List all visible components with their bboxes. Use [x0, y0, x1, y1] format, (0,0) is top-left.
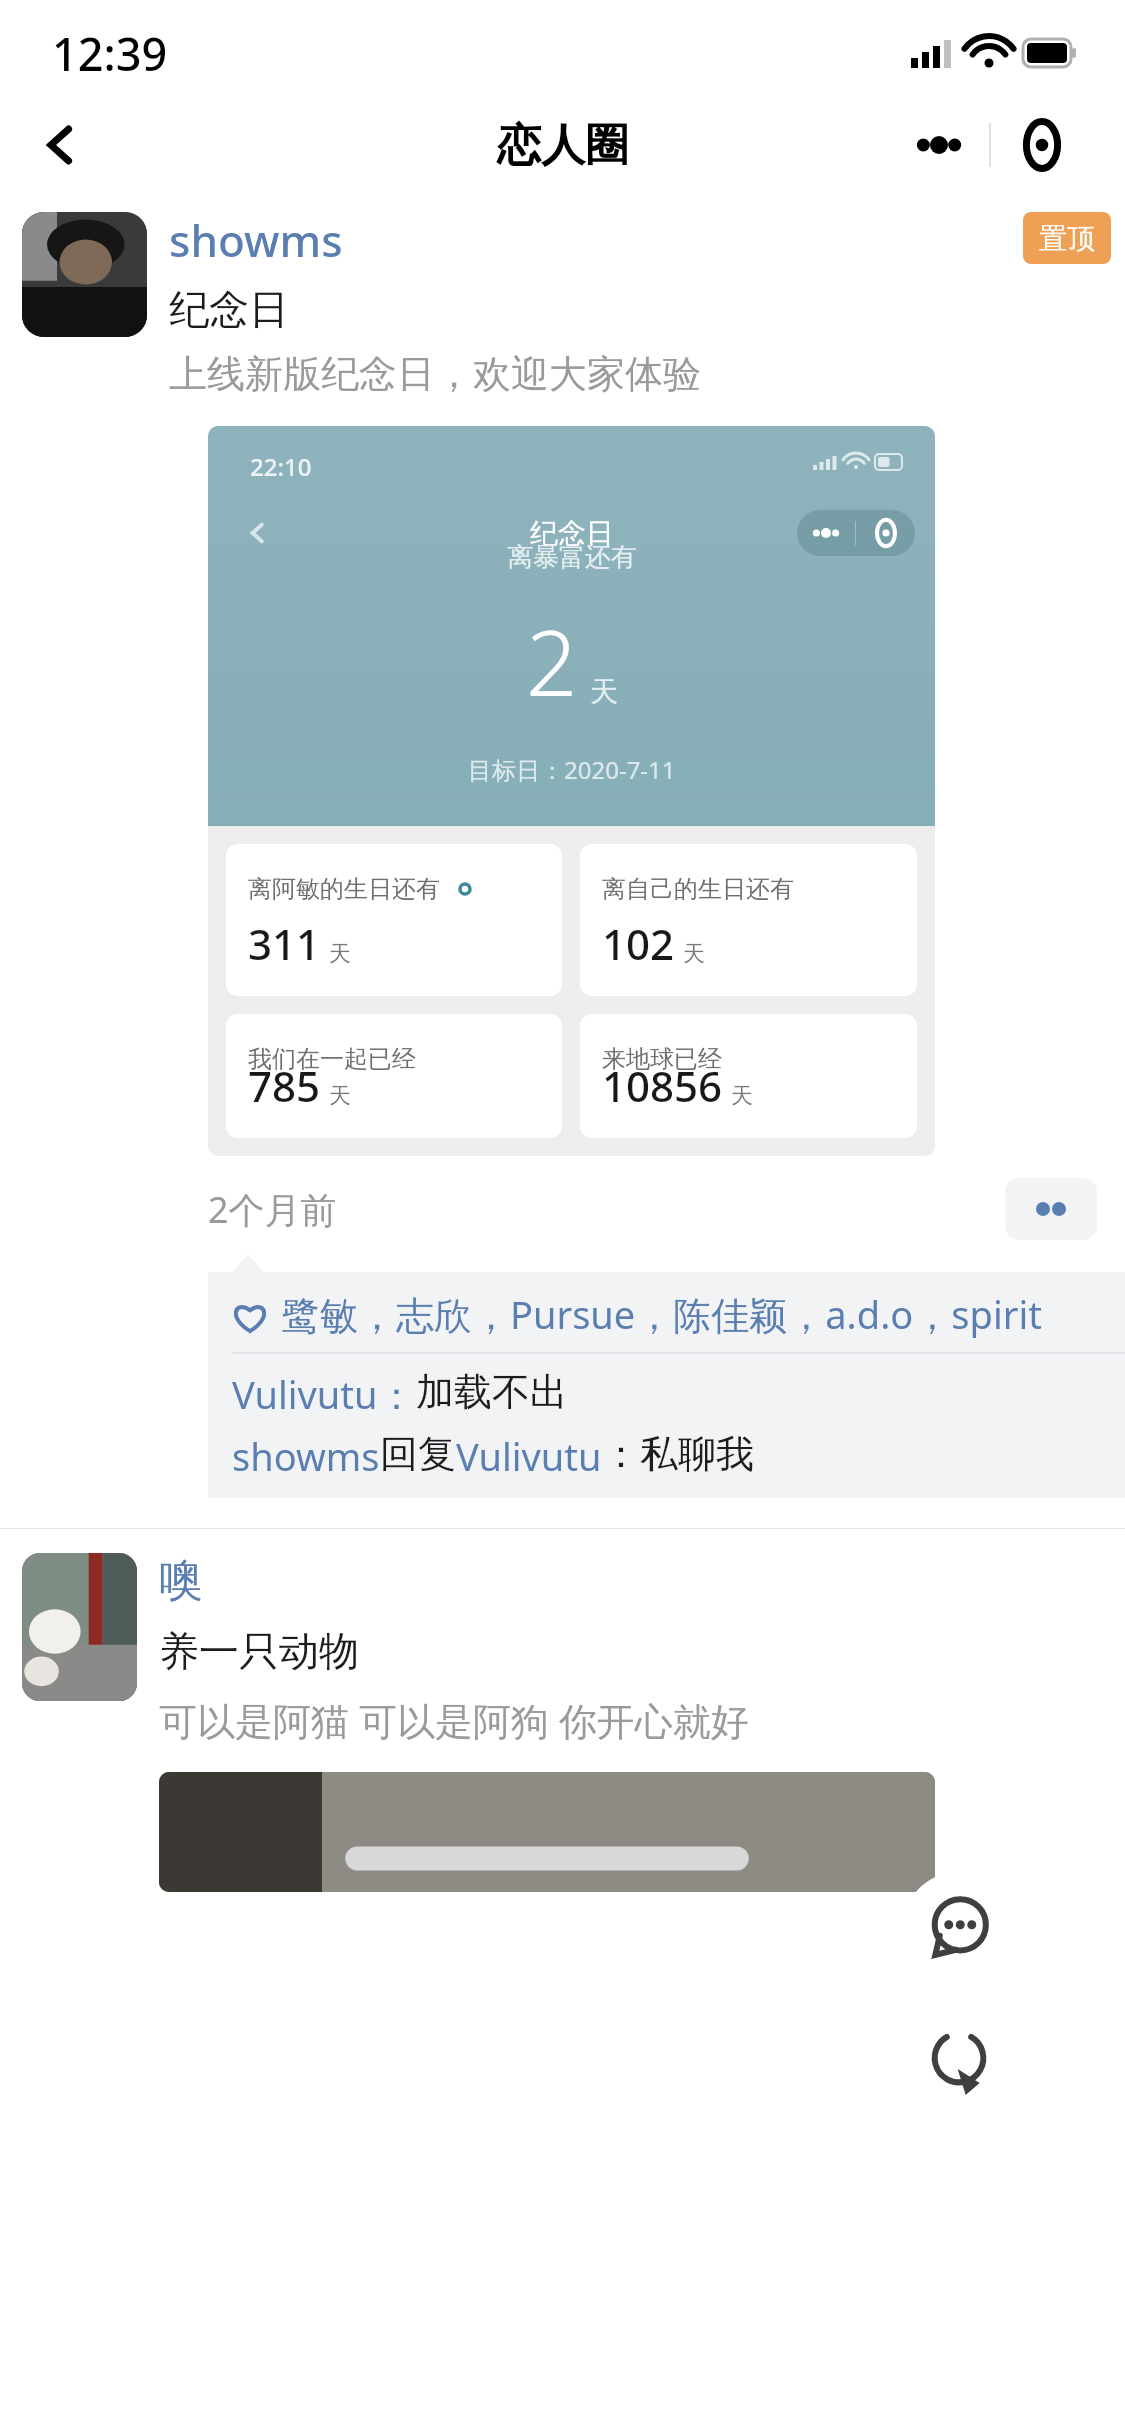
staticText: 加载不出 [416, 1368, 568, 1416]
button[interactable]: 22:10 [208, 426, 935, 1156]
button[interactable]: 来地球已经 [580, 1014, 917, 1138]
button[interactable]: Refresh [903, 2002, 1014, 2113]
staticText: 311 [248, 915, 321, 972]
button[interactable]: More actions [1005, 1178, 1097, 1240]
button[interactable]: Comments [903, 1872, 1014, 1983]
button[interactable]: 鹭敏，志欣，Pursue，陈佳颖，a.d.o，spirit [282, 1288, 1042, 1340]
button[interactable]: 噢 [159, 1553, 203, 1608]
button[interactable]: showms [232, 1430, 754, 1482]
staticText: 回复 [380, 1430, 456, 1478]
staticText: 来地球已经 [602, 1044, 722, 1074]
button[interactable]: More options [888, 105, 989, 185]
staticText: Vulivutu： [232, 1368, 416, 1420]
staticText: showms [232, 1430, 380, 1482]
staticText: 离阿敏的生日还有 [248, 874, 440, 904]
staticText: Vulivutu [456, 1430, 602, 1482]
staticText: ：私聊我 [602, 1430, 754, 1478]
staticText: 恋人圈 [497, 118, 629, 173]
staticText: 我们在一起已经 [248, 1044, 416, 1074]
staticText: 10856 [602, 1057, 723, 1114]
staticText: 102 [602, 915, 675, 972]
staticText: 纪念日 [169, 284, 289, 334]
button[interactable]: Back [22, 106, 100, 184]
staticText: 天 [329, 940, 351, 968]
button[interactable] [159, 1772, 935, 1892]
staticText: 785 [248, 1057, 321, 1114]
staticText: 天 [329, 1082, 351, 1110]
staticText: 目标日：2020-7-11 [468, 753, 676, 786]
button[interactable]: Target [991, 105, 1093, 185]
staticText: 离暴富还有 [507, 541, 637, 574]
button[interactable]: Avatar 噢 [22, 1553, 137, 1701]
staticText: 置顶 [1039, 221, 1095, 256]
staticText: 养一只动物 [159, 1626, 359, 1676]
staticText: 离自己的生日还有 [602, 874, 794, 904]
staticText: 12:39 [52, 23, 168, 84]
button[interactable]: showms [169, 210, 343, 270]
button[interactable]: 离阿敏的生日还有 [226, 844, 562, 996]
staticText: 天 [731, 1082, 753, 1110]
staticText: 纪念日 [530, 516, 614, 551]
staticText: 天 [590, 674, 618, 709]
button[interactable]: Avatar showms [22, 212, 147, 337]
staticText: 2个月前 [208, 1185, 337, 1234]
button[interactable]: 我们在一起已经 [226, 1014, 562, 1138]
staticText: 天 [683, 940, 705, 968]
staticText: 22:10 [250, 450, 312, 483]
staticText: 上线新版纪念日，欢迎大家体验 [169, 350, 701, 398]
button[interactable]: Vulivutu： [232, 1368, 568, 1420]
staticText: 2 [526, 600, 578, 723]
staticText: 可以是阿猫 可以是阿狗 你开心就好 [159, 1694, 749, 1746]
button[interactable]: 置顶 [1023, 212, 1111, 264]
button[interactable]: 离自己的生日还有 [580, 844, 917, 996]
